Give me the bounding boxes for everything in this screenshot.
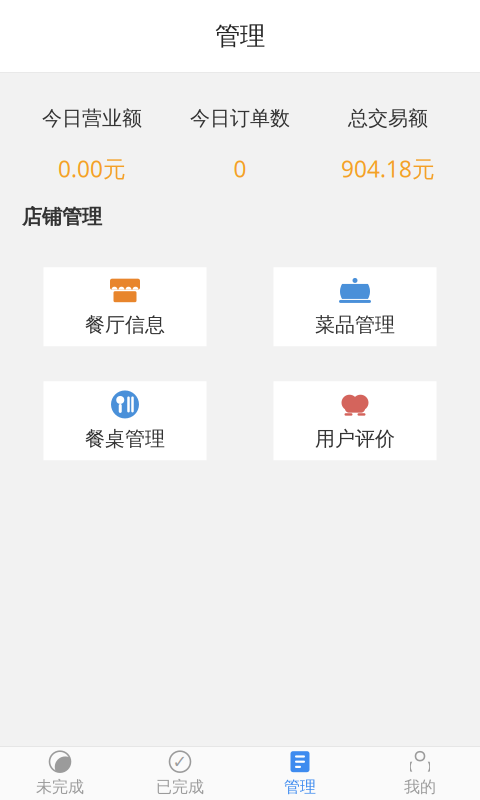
button[interactable]: 菜品管理 — [273, 267, 436, 346]
button[interactable]: 用户评价 — [273, 381, 436, 460]
staticText: 未完成 — [36, 777, 84, 797]
staticText: 管理 — [284, 777, 316, 797]
staticText: 我的 — [404, 777, 436, 797]
staticText: 店铺管理 — [22, 205, 102, 229]
staticText: 菜品管理 — [315, 312, 395, 337]
staticText: 今日营业额 — [42, 106, 142, 131]
staticText: 总交易额 — [348, 106, 428, 131]
staticText: 0.00元 — [58, 154, 126, 184]
staticText: 用户评价 — [315, 426, 395, 451]
staticText: 0 — [233, 154, 246, 184]
staticText: 今日订单数 — [190, 106, 290, 131]
button[interactable]: 我的 — [360, 747, 480, 800]
button[interactable]: 未完成 — [0, 747, 120, 800]
staticText: ✓ — [172, 752, 187, 771]
staticText: 餐桌管理 — [85, 426, 165, 451]
button[interactable]: 餐厅信息 — [43, 267, 206, 346]
button[interactable]: 管理 — [240, 747, 360, 800]
staticText: 已完成 — [156, 777, 204, 797]
button[interactable]: 餐桌管理 — [43, 381, 206, 460]
button[interactable]: ✓ — [120, 747, 240, 800]
staticText: 管理 — [215, 20, 265, 51]
staticText: 904.18元 — [341, 154, 435, 184]
staticText: 餐厅信息 — [85, 312, 165, 337]
